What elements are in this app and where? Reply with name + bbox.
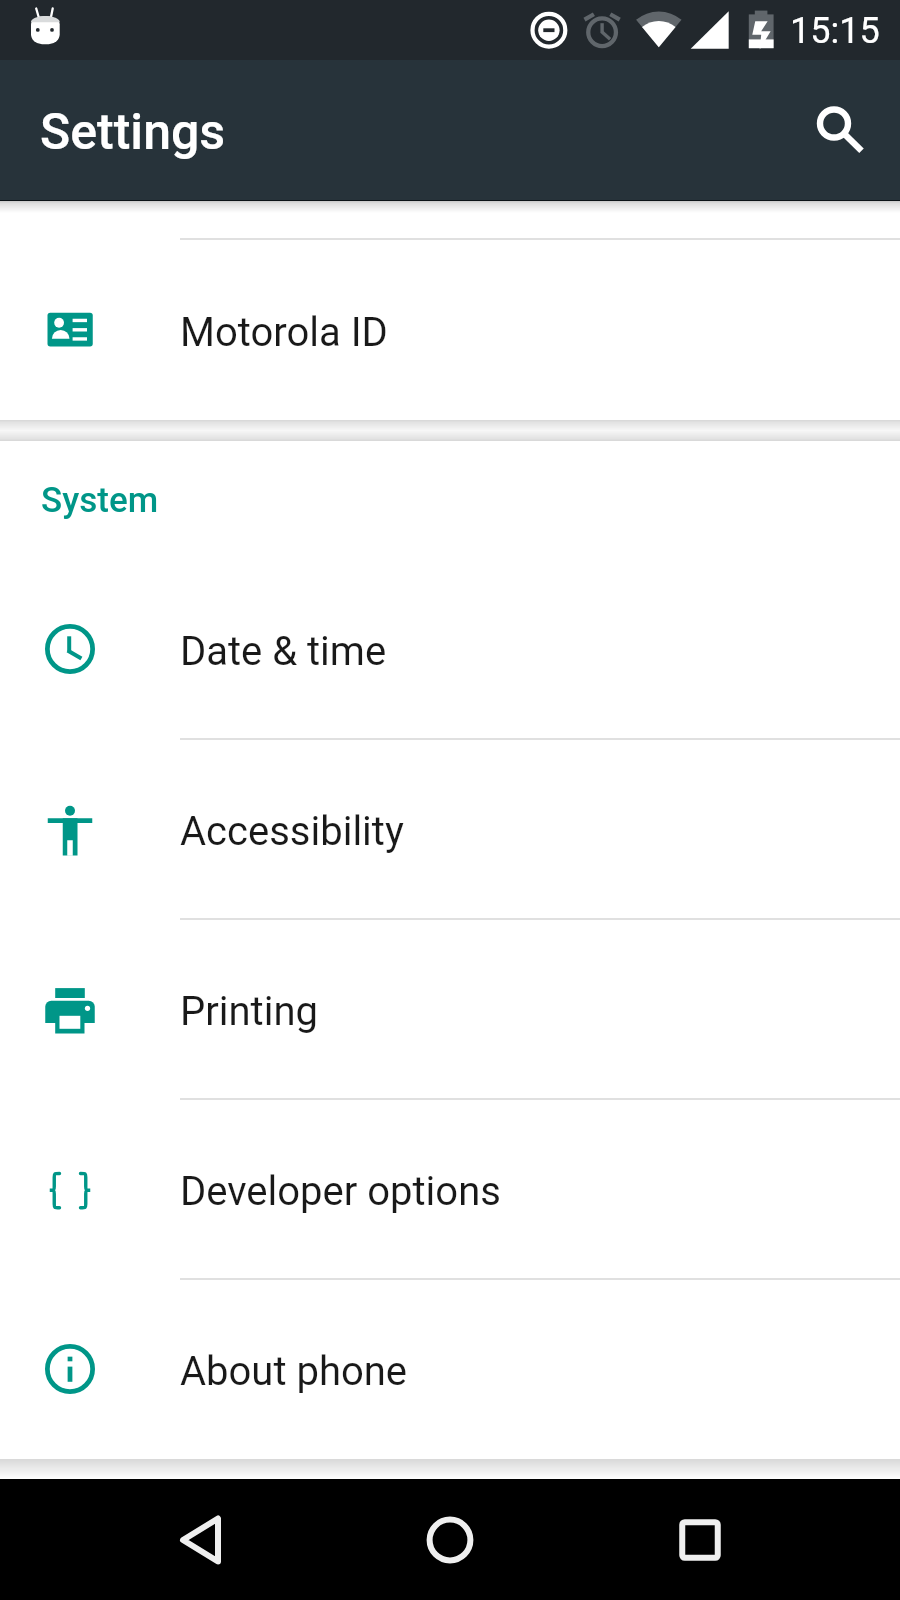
button[interactable]: Back <box>140 1480 260 1600</box>
button[interactable]: About phone <box>0 1280 900 1458</box>
staticText: Developer options <box>180 1168 501 1215</box>
staticText: Motorola ID <box>180 309 388 356</box>
button[interactable]: Accessibility <box>0 740 900 918</box>
staticText: Accessibility <box>180 808 404 855</box>
staticText: Settings <box>40 103 226 162</box>
button[interactable]: Recents <box>640 1480 760 1600</box>
staticText: Date & time <box>180 628 387 675</box>
staticText: System <box>41 480 159 521</box>
button[interactable]: Search <box>798 90 878 170</box>
button[interactable]: Printing <box>0 920 900 1098</box>
button[interactable]: Motorola ID <box>0 240 900 420</box>
button[interactable]: Date & time <box>0 560 900 738</box>
staticText: About phone <box>180 1348 408 1395</box>
button[interactable]: Developer options <box>0 1100 900 1278</box>
staticText: Printing <box>180 988 318 1035</box>
staticText: 15:15 <box>790 10 880 52</box>
button[interactable]: Home <box>390 1480 510 1600</box>
